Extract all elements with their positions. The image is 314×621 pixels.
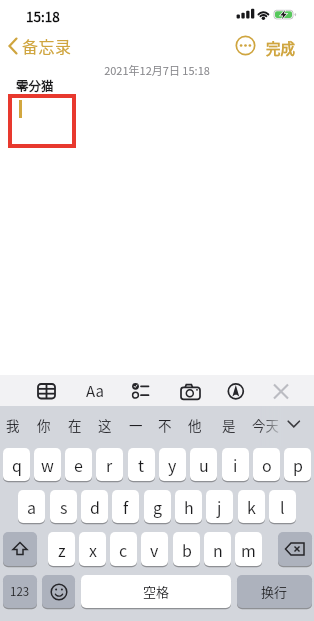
button[interactable]: [34, 378, 59, 403]
staticText: i: [233, 453, 238, 476]
button[interactable]: c: [110, 532, 137, 566]
button[interactable]: x: [79, 532, 106, 566]
staticText: s: [60, 495, 68, 518]
button[interactable]: b: [173, 532, 200, 566]
staticText: c: [119, 538, 128, 561]
staticText: u: [199, 453, 209, 476]
staticText: r: [106, 453, 113, 476]
button[interactable]: 123: [3, 575, 37, 608]
button[interactable]: i: [222, 448, 249, 481]
button[interactable]: [42, 575, 75, 608]
button[interactable]: 他: [188, 415, 202, 435]
button[interactable]: 换行: [237, 575, 312, 608]
staticText: 空格: [143, 582, 170, 601]
staticText: 不: [158, 415, 172, 435]
staticText: x: [89, 538, 97, 561]
button[interactable]: e: [65, 448, 92, 481]
staticText: j: [217, 495, 222, 518]
button[interactable]: w: [34, 448, 61, 481]
staticText: 换行: [261, 582, 288, 601]
button[interactable]: 你: [37, 415, 51, 435]
button[interactable]: f: [112, 490, 139, 523]
button[interactable]: o: [253, 448, 280, 481]
staticText: p: [293, 453, 303, 476]
button[interactable]: a: [18, 490, 45, 523]
staticText: k: [247, 495, 256, 518]
staticText: v: [150, 538, 159, 561]
button[interactable]: [235, 35, 256, 56]
button[interactable]: [278, 532, 312, 566]
staticText: t: [138, 453, 145, 476]
staticText: 是: [222, 415, 236, 435]
button[interactable]: v: [141, 532, 168, 566]
staticText: b: [182, 538, 192, 561]
staticText: g: [153, 495, 163, 518]
button[interactable]: [128, 378, 153, 403]
button[interactable]: q: [3, 448, 30, 481]
button[interactable]: y: [159, 448, 186, 481]
button[interactable]: h: [175, 490, 202, 523]
button[interactable]: Aa: [82, 378, 107, 403]
staticText: d: [90, 495, 100, 518]
staticText: f: [123, 495, 129, 518]
button[interactable]: 不: [158, 415, 172, 435]
staticText: 今天: [252, 415, 279, 435]
staticText: o: [262, 453, 272, 476]
button[interactable]: 在: [68, 415, 82, 435]
staticText: 这: [98, 415, 112, 435]
button[interactable]: 空格: [81, 575, 231, 608]
button[interactable]: l: [269, 490, 296, 523]
button[interactable]: z: [48, 532, 75, 566]
staticText: h: [184, 495, 194, 518]
button[interactable]: r: [96, 448, 123, 481]
button[interactable]: [178, 378, 203, 403]
button[interactable]: [3, 532, 37, 566]
button[interactable]: 备忘录: [6, 34, 72, 57]
button[interactable]: [282, 409, 306, 433]
staticText: Aa: [86, 380, 104, 402]
staticText: 在: [68, 415, 82, 435]
button[interactable]: 完成: [266, 37, 295, 58]
staticText: e: [74, 453, 83, 476]
button[interactable]: [224, 378, 249, 403]
staticText: a: [27, 495, 37, 518]
button[interactable]: u: [190, 448, 217, 481]
staticText: 2021年12月7日 15:18: [0, 62, 314, 78]
button[interactable]: g: [144, 490, 171, 523]
staticText: 零分猫: [16, 76, 54, 94]
button[interactable]: 这: [98, 415, 112, 435]
button[interactable]: k: [238, 490, 265, 523]
button[interactable]: j: [206, 490, 233, 523]
button[interactable]: n: [204, 532, 231, 566]
staticText: y: [168, 453, 177, 476]
staticText: 备忘录: [22, 34, 72, 57]
button[interactable]: s: [50, 490, 77, 523]
button[interactable]: [269, 378, 294, 403]
button[interactable]: 是: [222, 415, 236, 435]
button[interactable]: 今天: [252, 415, 279, 435]
staticText: 15:18: [26, 6, 60, 26]
staticText: 完成: [266, 37, 295, 58]
staticText: n: [213, 538, 223, 561]
button[interactable]: p: [284, 448, 311, 481]
button[interactable]: t: [128, 448, 155, 481]
staticText: w: [41, 453, 54, 476]
staticText: 你: [37, 415, 51, 435]
button[interactable]: 我: [6, 415, 20, 435]
staticText: z: [58, 538, 66, 561]
button[interactable]: 一: [129, 415, 143, 435]
staticText: l: [280, 495, 285, 518]
staticText: 一: [129, 415, 143, 435]
button[interactable]: m: [235, 532, 262, 566]
button[interactable]: d: [81, 490, 108, 523]
staticText: m: [241, 538, 256, 561]
staticText: 123: [10, 583, 30, 600]
staticText: 他: [188, 415, 202, 435]
staticText: q: [12, 453, 22, 476]
staticText: 我: [6, 415, 20, 435]
